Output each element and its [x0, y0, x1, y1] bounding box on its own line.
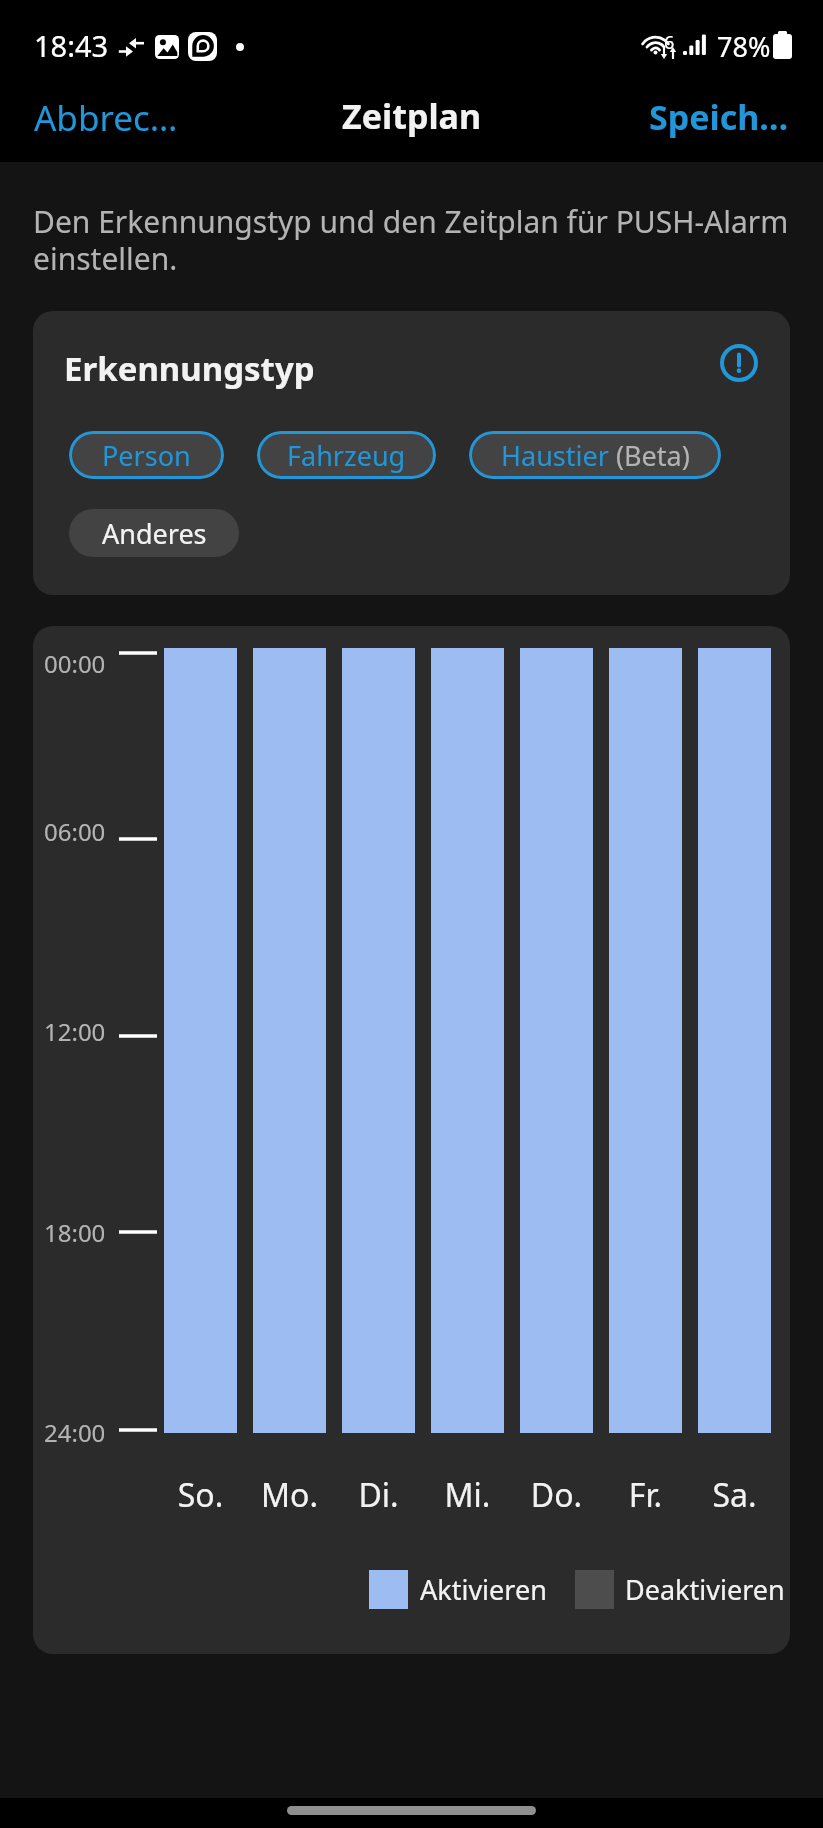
staticText: 12:00 — [44, 1015, 106, 1048]
staticText: Deaktivieren — [625, 1571, 785, 1608]
staticText: 6 — [664, 30, 675, 55]
staticText: Mi. — [431, 1473, 504, 1517]
staticText: 18:00 — [44, 1216, 106, 1249]
button[interactable]: Haustier (Beta) — [469, 431, 721, 479]
staticText: Person — [102, 437, 191, 474]
staticText: Di. — [342, 1473, 415, 1517]
staticText: 18:43 — [34, 26, 109, 65]
staticText: 24:00 — [44, 1416, 106, 1449]
staticText: Anderes — [102, 515, 207, 552]
button[interactable]: Fahrzeug — [257, 431, 436, 479]
staticText: Sa. — [698, 1473, 771, 1517]
staticText: Fr. — [609, 1473, 682, 1517]
staticText: Abbrec… — [34, 94, 178, 138]
staticText: 78% — [717, 28, 771, 65]
staticText: 00:00 — [44, 647, 106, 680]
staticText: Do. — [520, 1473, 593, 1517]
button[interactable]: Speich… — [635, 86, 823, 146]
staticText: Speich… — [649, 94, 789, 138]
staticText: Den Erkennungstyp und den Zeitplan für P… — [33, 201, 793, 279]
staticText: Erkennungstyp — [64, 346, 315, 391]
button[interactable]: Deaktivieren — [575, 1570, 785, 1609]
staticText: Mo. — [253, 1473, 326, 1517]
staticText: Aktivieren — [420, 1571, 547, 1608]
button[interactable]: Abbrec… — [0, 86, 192, 146]
staticText: 06:00 — [44, 815, 106, 848]
staticText: Zeitplan — [342, 93, 481, 139]
button[interactable]: Aktivieren — [369, 1570, 547, 1609]
button[interactable]: Person — [69, 431, 224, 479]
staticText: Fahrzeug — [287, 437, 406, 474]
staticText: Haustier (Beta) — [501, 437, 690, 474]
button[interactable]: Info — [713, 337, 765, 389]
button[interactable]: Anderes — [69, 509, 239, 557]
staticText: So. — [164, 1473, 237, 1517]
